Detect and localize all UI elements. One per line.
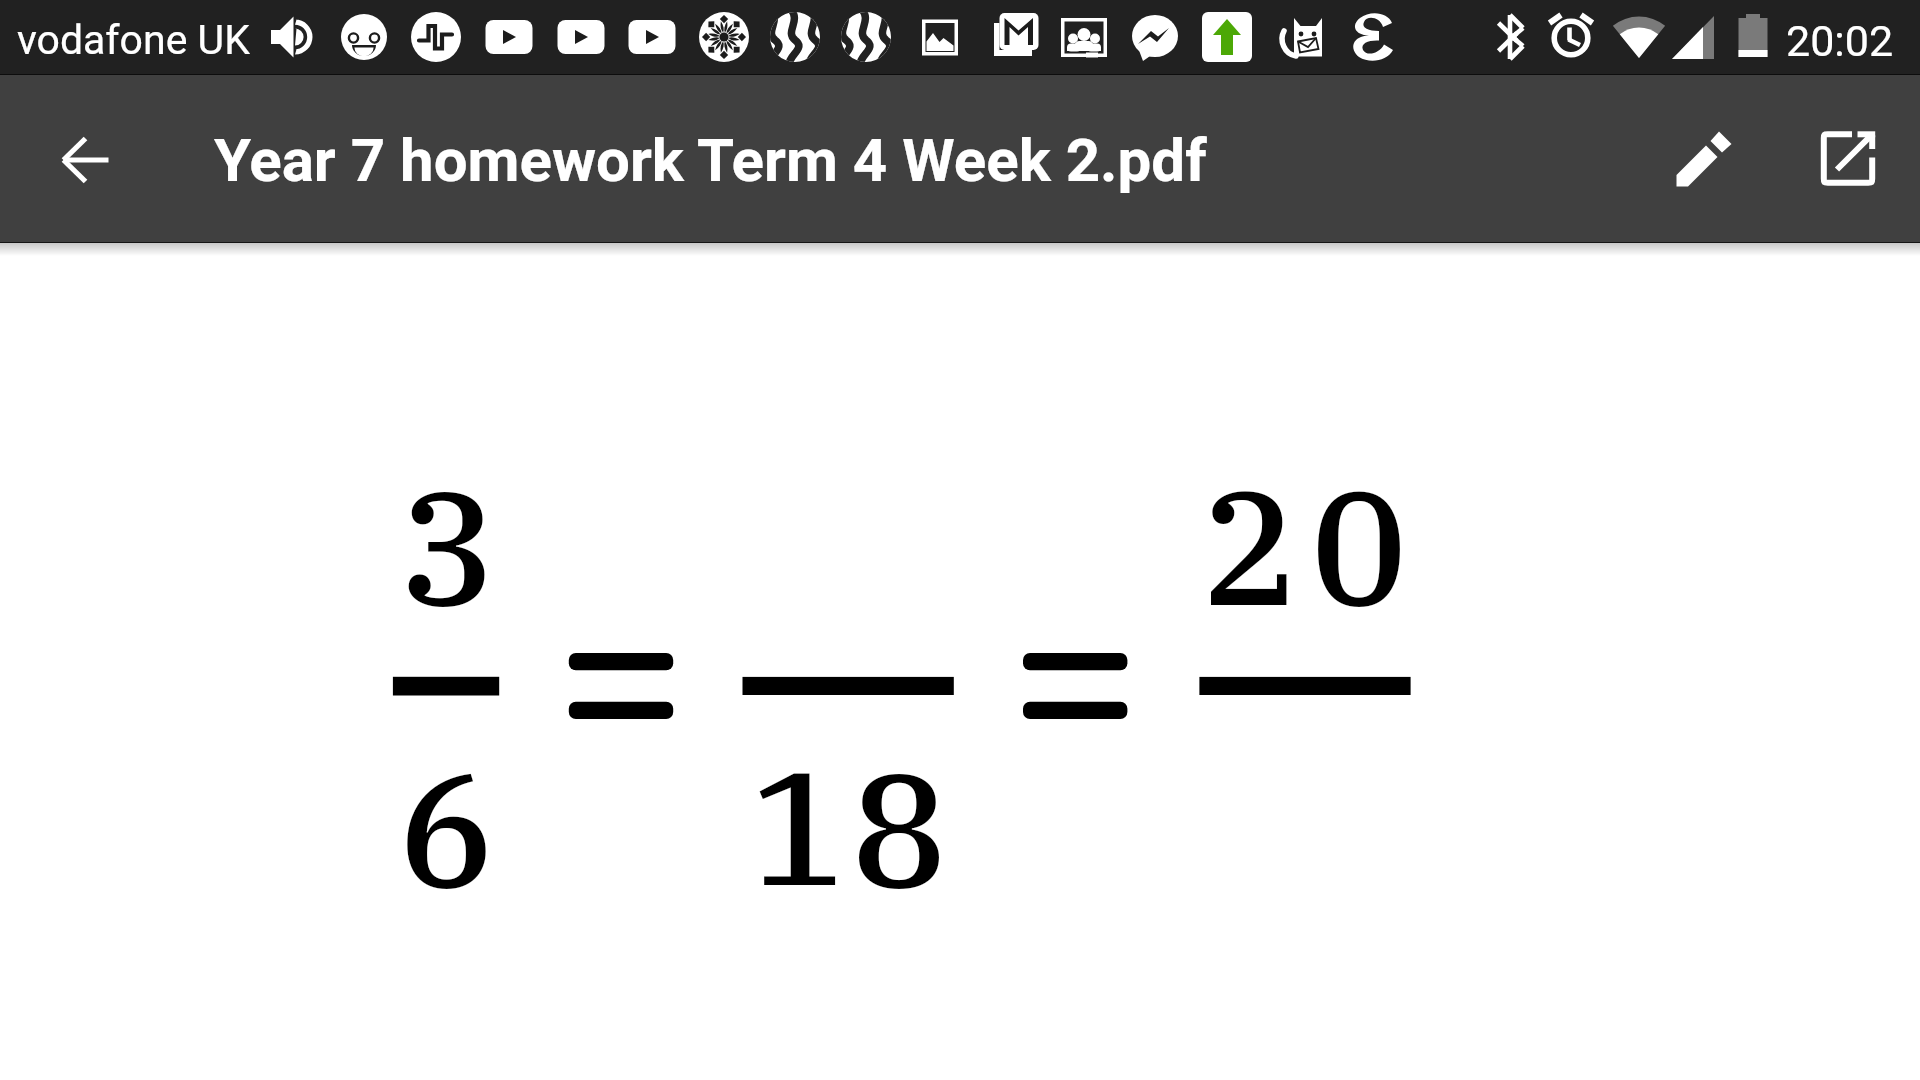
button[interactable]: Edit [1656, 110, 1752, 206]
staticText: 1 [750, 721, 847, 929]
staticText: 20:02 [1786, 16, 1894, 66]
button[interactable]: Open in new window [1800, 110, 1896, 206]
staticText: vodafone UK [17, 16, 250, 64]
staticText: 6 [398, 723, 495, 931]
staticText: 8 [851, 723, 948, 931]
staticText: 2 [1203, 441, 1300, 649]
staticText: 0 [1311, 441, 1408, 649]
staticText: 3 [400, 441, 497, 649]
staticText: Year 7 homework Term 4 Week 2.pdf [214, 125, 1207, 195]
button[interactable]: Navigate up [37, 112, 133, 208]
